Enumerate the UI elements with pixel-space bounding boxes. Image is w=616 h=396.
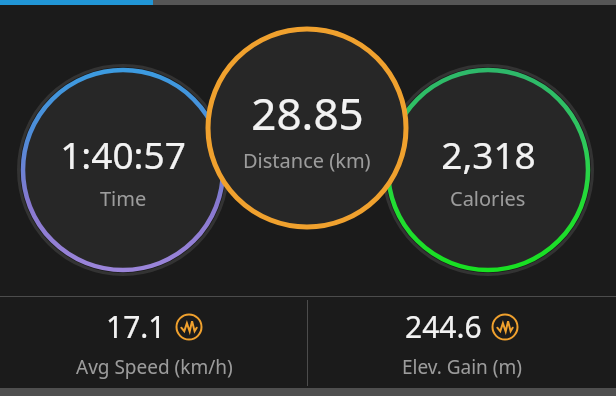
staticText: Avg Speed (km/h) <box>76 354 233 380</box>
staticText: Elev. Gain (m) <box>402 354 522 380</box>
staticText: 2,318 <box>441 129 536 179</box>
staticText: Time <box>100 185 147 212</box>
button[interactable]: 244.6 <box>308 297 616 388</box>
button[interactable]: Distance 28.85 km <box>208 29 406 227</box>
button[interactable]: Time 1:40:57 <box>23 70 223 270</box>
staticText: Calories <box>450 185 526 212</box>
other: Sensor data <box>491 313 519 341</box>
staticText: 17.1 <box>106 306 166 347</box>
staticText: 1:40:57 <box>60 129 186 179</box>
staticText: 28.85 <box>251 83 364 143</box>
button[interactable]: 17.1 <box>0 297 308 388</box>
staticText: 244.6 <box>405 306 482 347</box>
button[interactable]: Calories 2,318 <box>388 70 588 270</box>
staticText: Distance (km) <box>243 147 371 174</box>
other: Sensor data <box>175 313 203 341</box>
